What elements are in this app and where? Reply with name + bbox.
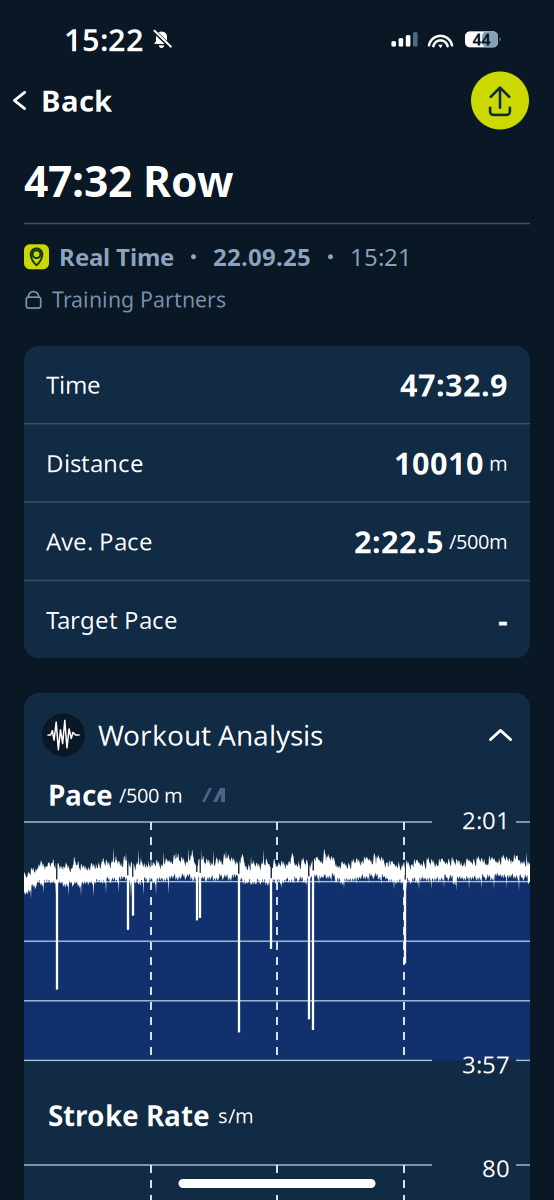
staticText: 3:57 (462, 1048, 510, 1080)
staticText: Training Partners (52, 285, 226, 313)
staticText: s/m (218, 1102, 254, 1129)
staticText: m (489, 450, 508, 476)
staticText: Target Pace (46, 604, 178, 636)
staticText: Pace (48, 776, 113, 814)
button[interactable]: Workout Analysis (24, 693, 530, 777)
staticText: 47:32.9 (400, 364, 508, 405)
button[interactable]: Back (0, 69, 128, 132)
staticText: /500m (449, 528, 508, 555)
staticText: Ave. Pace (46, 525, 153, 557)
staticText: 80 (482, 1152, 510, 1184)
staticText: /500 m (119, 782, 183, 808)
staticText: Back (41, 81, 112, 120)
staticText: 15:21 (350, 241, 412, 273)
staticText: 44 (472, 29, 490, 50)
staticText: Stroke Rate (48, 1097, 210, 1134)
staticText: Workout Analysis (98, 716, 323, 754)
staticText: 2:22.5 (354, 521, 444, 562)
staticText: Time (46, 369, 101, 400)
staticText: Distance (46, 447, 144, 479)
staticText: Real Time (59, 241, 174, 273)
staticText: 47:32 Row (24, 152, 234, 209)
staticText: 2:01 (462, 804, 510, 836)
staticText: 15:22 (64, 19, 144, 60)
staticText: - (498, 599, 508, 640)
button[interactable]: Share (471, 71, 529, 129)
staticText: 22.09.25 (213, 241, 311, 273)
staticText: 10010 (394, 442, 484, 483)
